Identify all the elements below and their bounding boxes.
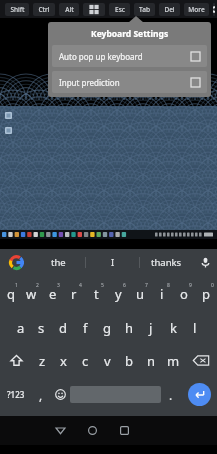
staticText: p (202, 285, 210, 303)
staticText: s (38, 319, 45, 337)
staticText: I (111, 256, 115, 269)
button[interactable]: Backspace (184, 344, 217, 377)
button[interactable]: thanks (140, 249, 193, 276)
button[interactable]: Auto pop up keyboard (52, 45, 207, 67)
staticText: Shift (10, 5, 25, 14)
staticText: 4 (79, 282, 82, 289)
staticText: n (147, 352, 156, 370)
staticText: 0 (211, 282, 214, 289)
button[interactable]: 0 (195, 276, 217, 311)
staticText: w (26, 285, 37, 303)
button[interactable]: Display settings (213, 3, 215, 16)
staticText: 5 (101, 282, 104, 289)
staticText: z (39, 352, 46, 370)
button[interactable]: 9 (173, 276, 195, 311)
button[interactable]: Voice input (193, 249, 217, 276)
staticText: q (7, 285, 15, 303)
button[interactable]: m (162, 344, 184, 377)
staticText: Esc (115, 5, 125, 14)
button[interactable]: ?123 (0, 377, 31, 412)
staticText: More (188, 5, 205, 14)
staticText: Del (164, 5, 175, 14)
button[interactable]: f (74, 311, 96, 344)
staticText: k (170, 319, 177, 337)
button[interactable]: , (31, 377, 50, 412)
button[interactable]: More (184, 3, 209, 16)
staticText: l (193, 319, 197, 337)
button[interactable]: Shift (0, 344, 32, 377)
staticText: e (49, 285, 57, 303)
staticText: u (136, 285, 145, 303)
button[interactable]: I (86, 249, 139, 276)
button[interactable]: Enter (181, 377, 217, 412)
button[interactable]: Back (44, 416, 76, 445)
staticText: x (60, 352, 67, 370)
button[interactable]: s (31, 311, 52, 344)
button[interactable]: 6 (107, 276, 129, 311)
button[interactable]: x (53, 344, 74, 377)
button[interactable]: j (140, 311, 162, 344)
button[interactable]: 7 (129, 276, 151, 311)
button[interactable]: Home (76, 416, 108, 445)
button[interactable]: 2 (21, 276, 42, 311)
button[interactable]: n (140, 344, 162, 377)
button[interactable]: a (10, 311, 31, 344)
staticText: Alt (65, 5, 74, 14)
button[interactable]: Emoji (50, 377, 70, 412)
staticText: ?123 (7, 389, 25, 400)
staticText: 9 (189, 282, 192, 289)
staticText: Ctrl (38, 5, 50, 14)
staticText: 6 (123, 282, 126, 289)
staticText: f (83, 319, 88, 337)
button[interactable]: Alt (59, 3, 79, 16)
staticText: . (169, 387, 173, 403)
button[interactable]: Google (0, 249, 32, 276)
button[interactable]: c (74, 344, 96, 377)
button[interactable]: d (52, 311, 74, 344)
button[interactable]: . (161, 377, 181, 412)
staticText: Keyboard Settings (91, 28, 169, 40)
button[interactable]: k (162, 311, 184, 344)
button[interactable]: l (184, 311, 206, 344)
button[interactable]: z (32, 344, 53, 377)
button[interactable]: 4 (63, 276, 85, 311)
button[interactable]: Del (159, 3, 180, 16)
staticText: 7 (145, 282, 148, 289)
button[interactable]: b (118, 344, 140, 377)
button[interactable]: 5 (85, 276, 107, 311)
button[interactable]: h (118, 311, 140, 344)
button[interactable]: Windows (83, 3, 105, 16)
staticText: m (167, 352, 180, 370)
staticText: b (125, 352, 133, 370)
staticText: r (71, 285, 77, 303)
staticText: v (104, 352, 111, 370)
staticText: i (160, 285, 164, 303)
button[interactable]: 8 (151, 276, 173, 311)
staticText: the (51, 256, 66, 269)
staticText: j (149, 319, 153, 337)
button[interactable]: Recents (108, 416, 140, 445)
staticText: t (94, 285, 99, 303)
button[interactable]: 1 (0, 276, 21, 311)
staticText: Input prediction (59, 77, 191, 88)
button[interactable]: Shift (5, 3, 29, 16)
staticText: 8 (167, 282, 170, 289)
staticText: o (180, 285, 188, 303)
staticText: h (125, 319, 134, 337)
staticText: 3 (57, 282, 60, 289)
button[interactable]: Input prediction (52, 71, 207, 93)
button[interactable]: Tab (134, 3, 155, 16)
staticText: 1 (15, 282, 18, 289)
button[interactable]: v (96, 344, 118, 377)
button[interactable]: g (96, 311, 118, 344)
button[interactable]: Ctrl (33, 3, 55, 16)
staticText: y (115, 285, 122, 303)
button[interactable]: the (32, 249, 85, 276)
button[interactable]: 3 (42, 276, 63, 311)
button[interactable]: Esc (109, 3, 130, 16)
staticText: , (39, 387, 43, 403)
staticText: 2 (36, 282, 39, 289)
staticText: c (82, 352, 89, 370)
staticText: Tab (139, 5, 150, 14)
